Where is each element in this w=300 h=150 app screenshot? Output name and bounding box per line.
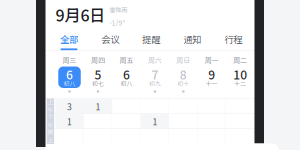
staticText: 周四 <box>91 55 105 65</box>
staticText: 下午 <box>47 112 53 129</box>
staticText: 全部 <box>60 32 78 46</box>
button[interactable]: 周日 <box>169 56 198 98</box>
staticText: 6 <box>66 66 73 83</box>
staticText: 初十 <box>177 79 189 88</box>
staticText: 周二 <box>233 55 247 65</box>
staticText: 上午 <box>47 97 53 114</box>
staticText: 周日 <box>176 55 190 65</box>
button[interactable]: 会议 <box>90 29 131 49</box>
staticText: 初八 <box>120 79 132 88</box>
staticText: 1 <box>67 115 72 128</box>
staticText: 十二 <box>234 79 246 88</box>
staticText: 初九 <box>149 79 161 88</box>
staticText: 7 <box>151 66 158 83</box>
button[interactable]: 周一 <box>198 56 226 98</box>
button[interactable]: 1 <box>84 99 112 114</box>
button[interactable]: 1 <box>55 114 84 129</box>
staticText: 初七 <box>92 79 104 88</box>
staticText: 提醒 <box>142 32 160 46</box>
button[interactable]: 9月6日 <box>45 0 165 22</box>
staticText: 雷阵雨 <box>109 5 127 14</box>
button[interactable]: 全部 <box>49 29 90 49</box>
staticText: -1/9° <box>109 18 124 28</box>
button[interactable]: 周四 <box>84 56 112 98</box>
staticText: 周六 <box>148 55 162 65</box>
staticText: 周三 <box>62 55 76 65</box>
staticText: 周一 <box>205 55 219 65</box>
staticText: 3 <box>67 100 72 113</box>
button[interactable]: 周五 <box>112 56 141 98</box>
staticText: 十一 <box>206 79 218 88</box>
staticText: 5 <box>94 66 101 83</box>
staticText: 通知 <box>183 32 201 46</box>
staticText: 行程 <box>224 32 242 46</box>
staticText: 6 <box>123 66 130 83</box>
staticText: 初八 <box>63 79 75 88</box>
staticText: 9 <box>208 66 215 83</box>
button[interactable]: 周六 <box>141 56 169 98</box>
button[interactable]: 周三 <box>55 56 84 98</box>
button[interactable]: 行程 <box>213 29 254 49</box>
button[interactable]: 3 <box>55 99 84 114</box>
staticText: 晚上 <box>47 127 53 144</box>
button[interactable]: 1 <box>141 114 169 129</box>
staticText: 1 <box>152 115 157 128</box>
staticText: 会议 <box>101 32 119 46</box>
button[interactable]: 通知 <box>172 29 213 49</box>
staticText: 周五 <box>119 55 133 65</box>
staticText: 8 <box>180 66 187 83</box>
staticText: 10 <box>233 66 247 83</box>
button[interactable]: 周二 <box>226 56 254 98</box>
staticText: 9月6日 <box>55 3 105 26</box>
staticText: 1 <box>95 100 100 113</box>
button[interactable]: 提醒 <box>131 29 172 49</box>
